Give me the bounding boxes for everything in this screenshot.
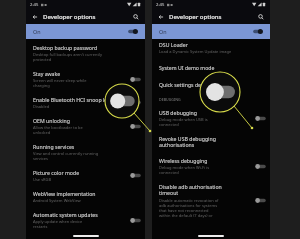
button[interactable]: Toggle — [129, 76, 141, 83]
button[interactable]: Search — [131, 12, 141, 22]
staticText: Developer options — [169, 13, 222, 21]
staticText: On — [159, 28, 167, 35]
button[interactable]: On — [152, 24, 270, 39]
staticText: Enable Bluetooth HCI snoop log — [33, 96, 111, 103]
button[interactable]: On — [26, 24, 145, 39]
button[interactable]: DSU Loader — [152, 39, 270, 57]
staticText: System UI demo mode — [159, 64, 215, 71]
button[interactable]: Toggle — [254, 163, 266, 170]
staticText: Disable automatic revocation of adb auth… — [159, 198, 222, 218]
button[interactable]: Toggle — [254, 115, 266, 122]
staticText: Revoke USB debugging authorisations — [159, 135, 216, 149]
staticText: Debug mode when USB is connected — [159, 117, 208, 127]
button[interactable]: Back — [156, 12, 166, 22]
staticText: Debug mode when Wi-Fi is connected — [159, 165, 210, 175]
staticText: Use sRGB — [33, 177, 52, 182]
button[interactable]: Desktop backup password — [26, 39, 145, 65]
button[interactable]: Picture color mode — [26, 164, 145, 185]
staticText: 2:45 — [30, 2, 39, 8]
staticText: Developer options — [43, 13, 96, 21]
staticText: WebView implementation — [33, 190, 96, 197]
button[interactable]: Enable Bluetooth HCI snoop log — [26, 91, 145, 112]
staticText: 2:45 — [156, 2, 165, 8]
button[interactable]: Toggle — [129, 172, 141, 179]
button[interactable]: WebView implementation — [26, 185, 145, 206]
button[interactable]: USB debugging — [152, 104, 270, 130]
button[interactable]: Stay awake — [26, 65, 145, 91]
staticText: OEM unlocking — [33, 117, 70, 124]
button[interactable]: Automatic system updates — [26, 206, 145, 232]
staticText: Desktop full backups aren't currently pr… — [33, 52, 102, 62]
staticText: On — [33, 28, 41, 35]
button[interactable]: Toggle — [129, 99, 141, 106]
staticText: Picture color mode — [33, 169, 80, 176]
button[interactable]: Disable adb authorisation timeout — [152, 178, 270, 221]
staticText: Desktop backup password — [33, 44, 98, 51]
staticText: Disabled — [33, 104, 50, 109]
button[interactable]: Running services — [26, 138, 145, 164]
staticText: Running services — [33, 143, 75, 150]
staticText: Quick settings developer tiles — [159, 81, 231, 88]
staticText: Wireless debugging — [159, 157, 208, 164]
button[interactable]: Search — [256, 12, 266, 22]
staticText: Screen will never sleep while charging — [33, 78, 87, 88]
staticText: DSU Loader — [159, 41, 188, 48]
staticText: Apply update when device restarts — [33, 219, 83, 229]
staticText: USB debugging — [159, 109, 197, 116]
staticText: Allow the bootloader to be unlocked — [33, 125, 83, 135]
staticText: Android System WebView — [33, 198, 81, 203]
staticText: Stay awake — [33, 70, 61, 77]
staticText: DEBUGGING — [159, 97, 181, 102]
button[interactable]: Toggle — [129, 123, 141, 130]
button[interactable]: Revoke USB debugging authorisations — [152, 130, 270, 152]
button[interactable]: OEM unlocking — [26, 112, 145, 138]
button[interactable]: Toggle — [129, 217, 141, 224]
button[interactable]: Toggle — [254, 197, 266, 204]
button[interactable]: Wireless debugging — [152, 152, 270, 178]
staticText: Load a Dynamic System Update image — [159, 49, 232, 54]
button[interactable]: Quick settings developer tiles — [152, 74, 270, 91]
button[interactable]: Back — [30, 12, 40, 22]
staticText: View and control currently running servi… — [33, 151, 99, 161]
staticText: Automatic system updates — [33, 211, 98, 218]
staticText: Disable adb authorisation timeout — [159, 183, 222, 197]
button[interactable]: System UI demo mode — [152, 57, 270, 74]
